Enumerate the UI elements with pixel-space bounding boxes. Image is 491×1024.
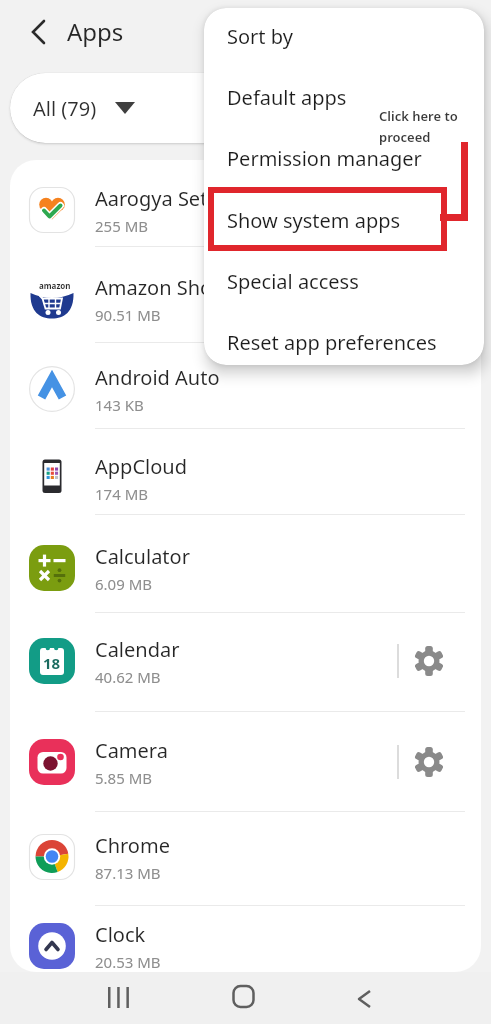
button[interactable]: Show system apps	[204, 190, 484, 251]
button[interactable]	[411, 643, 447, 679]
staticText: Click here to	[379, 107, 458, 125]
button[interactable]: Camera	[10, 717, 481, 807]
staticText: Clock	[95, 921, 146, 948]
staticText: Permission manager	[227, 145, 422, 172]
staticText: amazon	[39, 280, 71, 291]
staticText: AppCloud	[95, 453, 187, 480]
staticText: 174 MB	[95, 484, 148, 504]
staticText: Default apps	[227, 84, 347, 111]
staticText: Chrome	[95, 832, 170, 859]
staticText: 40.62 MB	[95, 667, 161, 687]
staticText: Calendar	[95, 636, 180, 663]
button[interactable]: Android Auto	[10, 344, 481, 434]
staticText: Apps	[67, 15, 124, 48]
staticText: 87.13 MB	[95, 863, 161, 883]
button[interactable]: Sort by	[204, 8, 484, 67]
button[interactable]: AppCloud	[10, 433, 481, 523]
staticText: Special access	[227, 268, 359, 295]
staticText: Reset app preferences	[227, 329, 437, 356]
staticText: Sort by	[227, 23, 293, 50]
button[interactable]: All (79)	[10, 73, 481, 143]
button[interactable]: amazon	[10, 254, 481, 344]
staticText: All (79)	[33, 95, 97, 122]
staticText: 6.09 MB	[95, 574, 153, 594]
button[interactable]: Clock	[10, 901, 481, 972]
button[interactable]: Aarogya Setu	[10, 165, 481, 255]
button[interactable]: 18	[10, 616, 481, 706]
button[interactable]: Default apps	[204, 67, 484, 128]
staticText: Android Auto	[95, 364, 220, 391]
button[interactable]	[340, 973, 388, 1021]
staticText: 20.53 MB	[95, 952, 161, 972]
staticText: 255 MB	[95, 216, 148, 236]
button[interactable]: Chrome	[10, 812, 481, 902]
button[interactable]: Permission manager	[204, 128, 484, 189]
staticText: Show system apps	[227, 207, 401, 234]
button[interactable]	[26, 15, 56, 49]
staticText: 5.85 MB	[95, 768, 153, 788]
staticText: 18	[43, 653, 61, 673]
button[interactable]: Special access	[204, 251, 484, 312]
button[interactable]: Reset app preferences	[204, 312, 484, 365]
staticText: proceed	[379, 128, 431, 146]
button[interactable]	[411, 744, 447, 780]
staticText: Calculator	[95, 543, 190, 570]
staticText: Aarogya Setu	[95, 185, 220, 212]
staticText: 143 KB	[95, 395, 144, 415]
button[interactable]	[220, 973, 268, 1021]
button[interactable]: Calculator	[10, 523, 481, 613]
button[interactable]	[95, 973, 143, 1021]
staticText: Camera	[95, 737, 168, 764]
staticText: 90.51 MB	[95, 305, 161, 325]
staticText: Amazon Shopping	[95, 274, 267, 301]
